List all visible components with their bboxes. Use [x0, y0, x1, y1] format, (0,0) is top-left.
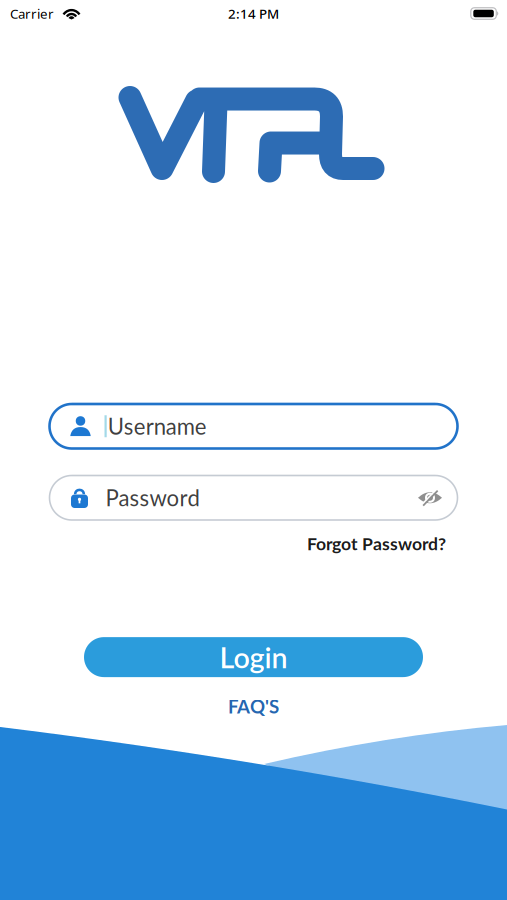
button[interactable]: Login: [84, 637, 423, 677]
staticText: Forgot Password?: [307, 533, 446, 554]
staticText: Password: [105, 484, 199, 511]
staticText: Carrier: [10, 5, 54, 22]
button[interactable]: Forgot Password?: [307, 533, 446, 554]
staticText: Username: [108, 413, 207, 440]
button[interactable]: Show password: [417, 488, 442, 507]
button[interactable]: Password: [49, 475, 457, 520]
button[interactable]: Username: [49, 404, 457, 448]
staticText: 2:14 PM: [228, 5, 279, 22]
button[interactable]: FAQ'S: [228, 695, 279, 717]
staticText: Login: [219, 640, 287, 674]
staticText: FAQ'S: [228, 695, 279, 717]
